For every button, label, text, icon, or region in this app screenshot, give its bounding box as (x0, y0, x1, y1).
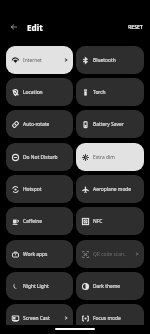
button[interactable]: Screen Cast (6, 304, 73, 325)
button[interactable]: Work apps (6, 240, 73, 268)
button[interactable]: Dark theme (76, 272, 144, 300)
staticText: Caffeine (23, 218, 68, 225)
button[interactable]: Caffeine (6, 207, 73, 235)
staticText: RESET (128, 23, 143, 30)
button[interactable]: RESET (128, 23, 143, 30)
button[interactable]: Extra dim (76, 143, 144, 171)
button[interactable]: Back (5, 18, 23, 36)
staticText: Bluetooth (93, 57, 139, 64)
staticText: Battery Saver (93, 121, 139, 128)
button[interactable]: Do Not Disturb (6, 143, 73, 171)
staticText: Internet (23, 57, 64, 64)
staticText: Auto-rotate (23, 121, 68, 128)
staticText: Focus mode (93, 315, 139, 322)
button[interactable]: Internet (6, 46, 73, 74)
button[interactable]: Battery Saver (76, 110, 144, 138)
staticText: Screen Cast (23, 315, 64, 322)
staticText: Night Light (23, 283, 68, 290)
button[interactable]: Torch (76, 78, 144, 106)
staticText: QR code scan.. (93, 251, 135, 258)
staticText: Do Not Disturb (23, 154, 68, 161)
staticText: Extra dim (93, 154, 139, 161)
button[interactable]: Aeroplane mode (76, 175, 144, 203)
button[interactable]: Focus mode (76, 304, 144, 325)
button[interactable]: Night Light (6, 272, 73, 300)
button[interactable]: Auto-rotate (6, 110, 73, 138)
staticText: NFC (93, 218, 139, 225)
staticText: Hotspot (23, 186, 68, 193)
button[interactable]: Bluetooth (76, 46, 144, 74)
staticText: Location (23, 89, 68, 96)
staticText: Work apps (23, 251, 68, 258)
button[interactable]: QR code scan.. (76, 240, 144, 268)
staticText: Edit (27, 22, 43, 33)
button[interactable]: NFC (76, 207, 144, 235)
staticText: Aeroplane mode (93, 186, 139, 193)
staticText: Dark theme (93, 283, 139, 290)
staticText: Torch (93, 89, 139, 96)
button[interactable]: Hotspot (6, 175, 73, 203)
button[interactable]: Location (6, 78, 73, 106)
